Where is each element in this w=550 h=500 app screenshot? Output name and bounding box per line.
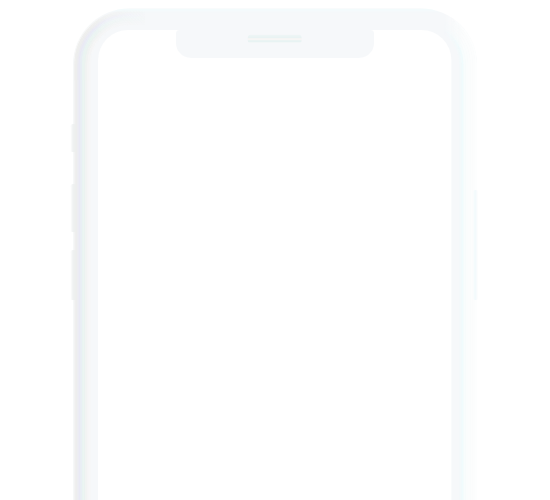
button[interactable]: Ring / Silent switch bbox=[68, 118, 82, 158]
button[interactable]: Power button bbox=[470, 186, 484, 304]
button[interactable]: Volume down bbox=[68, 246, 82, 304]
button[interactable]: Volume up bbox=[68, 180, 82, 236]
